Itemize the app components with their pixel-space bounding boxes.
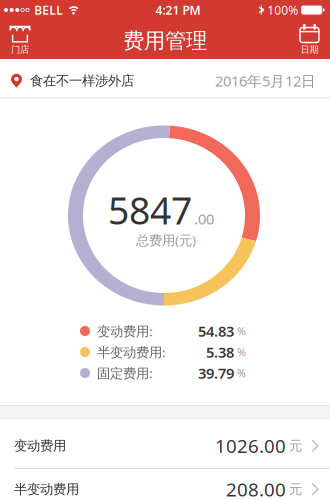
staticText: 5847	[108, 185, 192, 235]
staticText: 元	[289, 481, 302, 497]
staticText: 变动费用:	[97, 322, 153, 340]
button[interactable]: 门店	[0, 23, 31, 55]
staticText: 半变动费用:	[97, 343, 166, 361]
staticText: 39.79	[198, 363, 234, 383]
staticText: 固定费用:	[97, 364, 153, 382]
button[interactable]: 日期	[298, 23, 330, 55]
staticText: 54.83	[198, 321, 234, 341]
staticText: %	[237, 366, 246, 380]
staticText: .00	[194, 209, 214, 229]
staticText: 门店	[11, 44, 29, 55]
staticText: 4:21 PM	[155, 2, 200, 18]
staticText: 5.38	[206, 342, 234, 362]
staticText: BELL	[34, 2, 63, 18]
staticText: 半变动费用	[14, 481, 79, 497]
staticText: 2016年5月12日	[215, 71, 316, 90]
staticText: 总费用(元)	[136, 231, 196, 249]
staticText: 食在不一样涉外店	[30, 73, 134, 89]
staticText: 日期	[300, 44, 318, 55]
staticText: 208.00	[226, 477, 286, 500]
staticText: 元	[289, 438, 302, 454]
staticText: 100%	[267, 2, 298, 18]
staticText: %	[237, 324, 246, 338]
staticText: %	[237, 345, 246, 359]
button[interactable]: 食在不一样涉外店	[0, 59, 330, 97]
button[interactable]: 半变动费用	[0, 469, 330, 500]
staticText: 变动费用	[14, 438, 66, 454]
button[interactable]: 变动费用	[0, 419, 330, 468]
staticText: 1026.00	[215, 433, 286, 458]
staticText: 费用管理	[123, 28, 207, 54]
